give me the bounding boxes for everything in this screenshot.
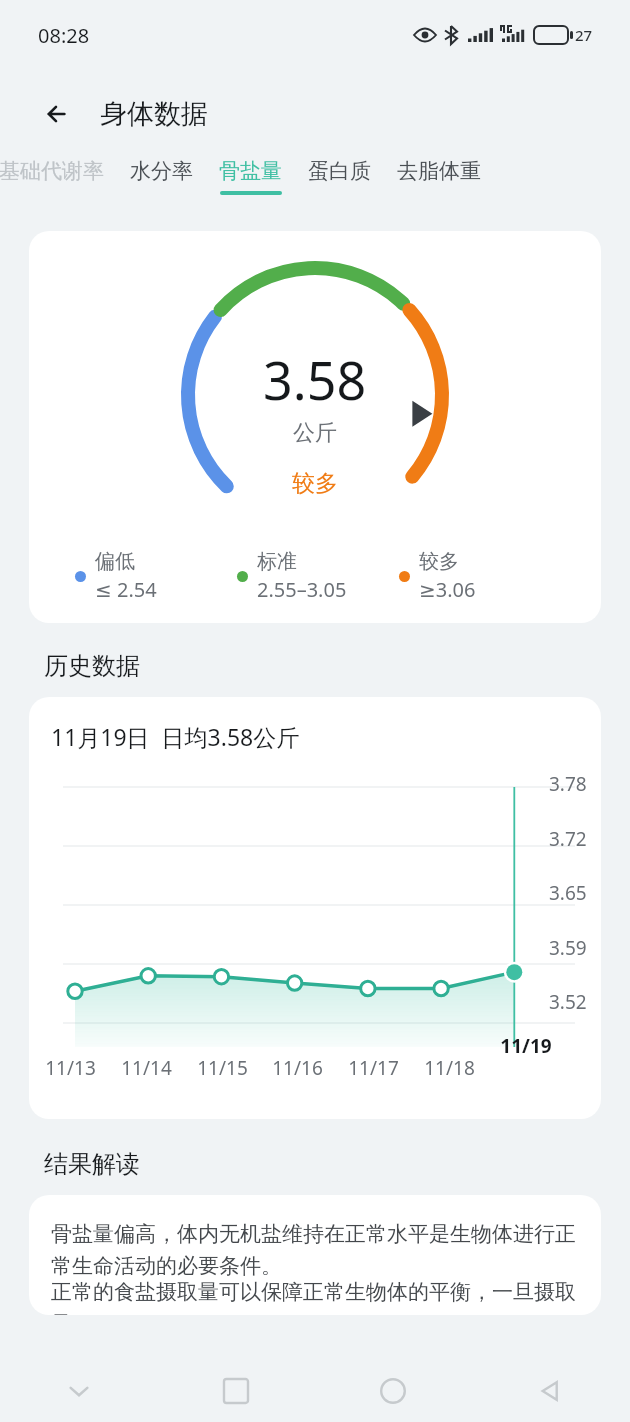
staticText: 正常的食盐摄取量可以保障正常生物体的平衡，一旦摄取量 [51, 1279, 581, 1315]
button[interactable]: Recent apps [157, 1360, 314, 1422]
button[interactable]: Hide keyboard [0, 1360, 157, 1422]
staticText: 结果解读 [44, 1149, 140, 1179]
button[interactable]: Home [314, 1360, 472, 1422]
staticText: 3.59 [549, 935, 587, 961]
staticText: 11/14 [121, 1055, 172, 1081]
button[interactable]: 3.58 [29, 231, 601, 623]
staticText: 较多 [292, 469, 338, 498]
button[interactable]: 较多 [399, 549, 561, 603]
staticText: 骨盐量 [219, 158, 282, 184]
staticText: 08:28 [38, 22, 90, 49]
button[interactable]: 基础代谢率 [0, 158, 104, 184]
staticText: 2.55–3.05 [257, 576, 347, 603]
staticText: 偏低 [95, 549, 135, 574]
staticText: 11/13 [45, 1055, 96, 1081]
staticText: 11/17 [348, 1055, 399, 1081]
staticText: 骨盐量偏高，体内无机盐维持在正常水平是生物体进行正常生命活动的必要条件。 [51, 1221, 581, 1279]
button[interactable]: 水分率 [130, 158, 193, 184]
staticText: 公斤 [293, 419, 337, 447]
staticText: 3.78 [549, 771, 587, 797]
staticText: 3.58 [263, 344, 367, 415]
button[interactable]: Back [30, 85, 88, 143]
staticText: 11/16 [272, 1055, 323, 1081]
staticText: ≤ 2.54 [95, 576, 157, 603]
staticText: 3.72 [549, 826, 587, 852]
staticText: 基础代谢率 [0, 158, 104, 184]
button[interactable]: 11月19日 日均3.58公斤 [29, 697, 601, 1119]
staticText: 11/18 [424, 1055, 475, 1081]
button[interactable]: 骨盐量偏高，体内无机盐维持在正常水平是生物体进行正常生命活动的必要条件。 [29, 1195, 601, 1315]
staticText: 27 [575, 25, 593, 45]
button[interactable]: Back [472, 1360, 630, 1422]
staticText: 标准 [257, 549, 297, 574]
button[interactable]: 偏低 [75, 549, 237, 603]
staticText: 历史数据 [44, 651, 140, 681]
button[interactable]: 去脂体重 [397, 158, 481, 184]
staticText: 3.65 [549, 880, 587, 906]
staticText: 蛋白质 [308, 158, 371, 184]
staticText: 11/15 [197, 1055, 248, 1081]
staticText: 较多 [419, 549, 459, 574]
staticText: 水分率 [130, 158, 193, 184]
staticText: 去脂体重 [397, 158, 481, 184]
button[interactable]: 骨盐量 [219, 158, 282, 195]
button[interactable]: 蛋白质 [308, 158, 371, 184]
staticText: 11/19 [500, 1033, 552, 1059]
staticText: 11月19日 日均3.58公斤 [51, 721, 300, 752]
staticText: ≥3.06 [419, 576, 476, 603]
staticText: 身体数据 [100, 97, 208, 131]
staticText: 3.52 [549, 989, 587, 1015]
button[interactable]: 标准 [237, 549, 399, 603]
